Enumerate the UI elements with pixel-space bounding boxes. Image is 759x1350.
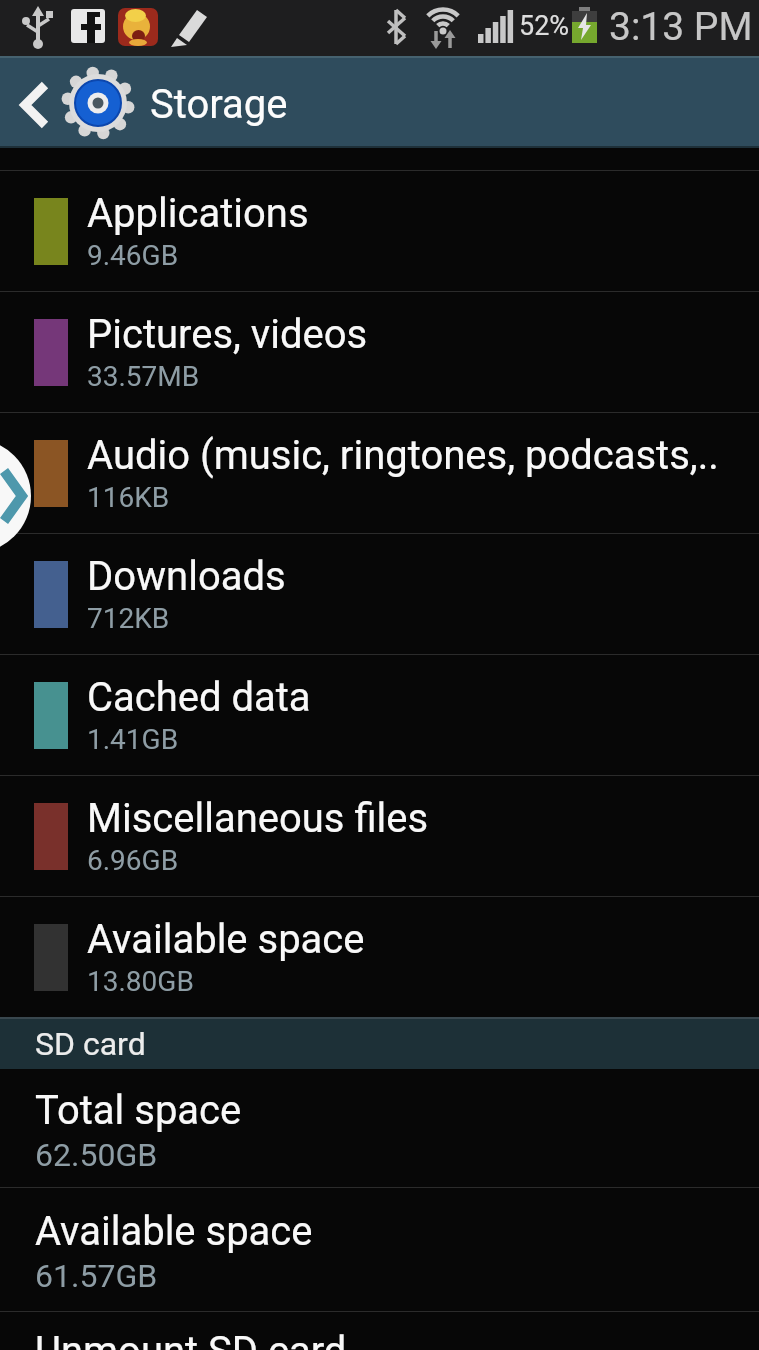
staticText: 13.80GB <box>87 965 194 998</box>
staticText: Cached data <box>87 674 311 721</box>
button[interactable]: Available space <box>0 897 759 1017</box>
staticText: Downloads <box>87 553 286 600</box>
button[interactable]: Total space <box>0 1069 759 1187</box>
button[interactable]: Unmount SD card <box>0 1312 759 1350</box>
staticText: 52% <box>519 10 570 42</box>
staticText: SD card <box>35 1025 146 1063</box>
staticText: 116KB <box>87 481 170 514</box>
staticText: 61.57GB <box>35 1257 158 1295</box>
staticText: Unmount SD card <box>35 1328 347 1350</box>
button[interactable]: Available space <box>0 1188 759 1311</box>
staticText: 1.41GB <box>87 723 179 756</box>
staticText: Storage <box>150 81 288 128</box>
staticText: Available space <box>35 1208 313 1255</box>
button[interactable]: Downloads <box>0 534 759 654</box>
staticText: 712KB <box>87 602 170 635</box>
staticText: Pictures, videos <box>87 311 368 358</box>
staticText: 6.96GB <box>87 844 179 877</box>
staticText: Miscellaneous files <box>87 795 429 842</box>
button[interactable]: Audio (music, ringtones, podcasts,.. <box>0 413 759 533</box>
staticText: 62.50GB <box>35 1136 158 1174</box>
button[interactable]: Cached data <box>0 655 759 775</box>
staticText: Total space <box>35 1087 242 1134</box>
staticText: 33.57MB <box>87 360 200 393</box>
staticText: Applications <box>87 190 309 237</box>
button[interactable]: Miscellaneous files <box>0 776 759 896</box>
button[interactable]: Storage <box>0 56 759 148</box>
staticText: Audio (music, ringtones, podcasts,.. <box>87 432 719 479</box>
staticText: 9.46GB <box>87 239 179 272</box>
button[interactable]: Applications <box>0 171 759 291</box>
staticText: Available space <box>87 916 365 963</box>
button[interactable]: Pictures, videos <box>0 292 759 412</box>
staticText: 3:13 PM <box>609 4 753 50</box>
